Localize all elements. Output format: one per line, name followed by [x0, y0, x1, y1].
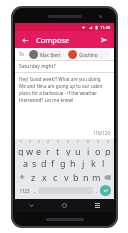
button[interactable]: 5 [53, 140, 63, 156]
staticText: j [82, 157, 85, 169]
staticText: 0 [107, 140, 109, 144]
button[interactable]: Home [48, 199, 81, 212]
staticText: Interested? Let me know! [19, 97, 74, 103]
staticText: l [102, 157, 105, 169]
staticText: e [36, 145, 42, 156]
staticText: o [95, 145, 101, 156]
staticText: Compose [36, 35, 98, 45]
button[interactable]: n [81, 170, 91, 184]
button[interactable]: k [88, 156, 98, 170]
staticText: t [56, 145, 60, 156]
button[interactable]: Max Ibert [29, 50, 64, 59]
staticText: a [23, 157, 29, 169]
staticText: h [70, 157, 76, 169]
staticText: 9 [97, 140, 99, 144]
staticText: 3 [38, 140, 40, 144]
staticText: Me and Nina are going up to our cabin wi… [19, 83, 110, 89]
button[interactable]: Hey! Good week?! What are you doing Satu… [15, 73, 114, 139]
button[interactable]: Recent apps [81, 199, 114, 212]
button[interactable]: v [61, 170, 71, 184]
staticText: k [91, 157, 96, 169]
staticText: w [26, 145, 34, 156]
staticText: c [53, 171, 58, 183]
staticText: p [105, 145, 111, 156]
staticText: ?123 [20, 188, 30, 194]
button[interactable]: 1 [16, 140, 25, 156]
button[interactable]: Enter [100, 185, 111, 196]
staticText: i [87, 145, 90, 156]
button[interactable]: l [98, 156, 108, 170]
button[interactable]: s [30, 156, 39, 170]
staticText: q [18, 145, 24, 156]
button[interactable]: 4 [43, 140, 53, 156]
staticText: m [92, 171, 101, 183]
staticText: , [34, 187, 36, 195]
button[interactable]: m [91, 170, 101, 184]
button[interactable]: 2 [25, 140, 34, 156]
button[interactable]: c [50, 170, 61, 184]
staticText: 11:30 [100, 25, 111, 30]
button[interactable]: j [78, 156, 88, 170]
staticText: y [66, 145, 71, 156]
staticText: r [46, 145, 50, 156]
button[interactable]: Shift [16, 170, 28, 184]
staticText: To [19, 51, 24, 57]
button[interactable]: d [39, 156, 48, 170]
button[interactable]: ?123 [18, 184, 31, 197]
staticText: 6 [67, 140, 69, 144]
staticText: Max Ibert [40, 52, 61, 58]
button[interactable]: 8 [83, 140, 93, 156]
staticText: u [75, 145, 81, 156]
staticText: Saturday night? [19, 63, 56, 70]
staticText: x [42, 171, 47, 183]
button[interactable]: Send [98, 34, 110, 46]
button[interactable]: , [31, 184, 38, 197]
staticText: z [31, 171, 36, 183]
staticText: 8 [87, 140, 89, 144]
button[interactable]: 9 [93, 140, 103, 156]
button[interactable]: 3 [34, 140, 43, 156]
staticText: 2 [29, 140, 31, 144]
staticText: b [73, 171, 79, 183]
button[interactable]: a [21, 156, 30, 170]
button[interactable]: Backspace [101, 170, 113, 184]
button[interactable]: b [71, 170, 81, 184]
staticText: f [51, 157, 55, 169]
button[interactable]: x [39, 170, 50, 184]
button[interactable]: . [93, 184, 100, 197]
staticText: 4 [47, 140, 49, 144]
staticText: n [83, 171, 89, 183]
button[interactable]: h [68, 156, 78, 170]
staticText: plans for a barbecue - if the weather ho… [19, 90, 110, 96]
button[interactable]: f [48, 156, 58, 170]
button[interactable]: Back [15, 199, 48, 212]
staticText: s [32, 157, 37, 169]
button[interactable]: Saturday night? [15, 61, 114, 72]
button[interactable]: 0 [103, 140, 113, 156]
staticText: d [41, 157, 47, 169]
button[interactable]: Giachino Tale [68, 50, 110, 59]
button[interactable]: 7 [73, 140, 83, 156]
button[interactable]: z [28, 170, 39, 184]
staticText: v [64, 171, 69, 183]
button[interactable]: 6 [63, 140, 73, 156]
button[interactable]: Back [19, 34, 31, 46]
staticText: 116/120 [19, 130, 110, 136]
staticText: 5 [57, 140, 59, 144]
staticText: 7 [77, 140, 79, 144]
staticText: g [60, 157, 66, 169]
staticText: Giachino Tale [79, 52, 107, 58]
button[interactable]: To [15, 48, 114, 60]
staticText: 1 [20, 140, 22, 144]
staticText: Hey! Good week?! What are you doing Satu… [19, 76, 110, 82]
button[interactable]: g [58, 156, 68, 170]
staticText: . [96, 187, 98, 195]
